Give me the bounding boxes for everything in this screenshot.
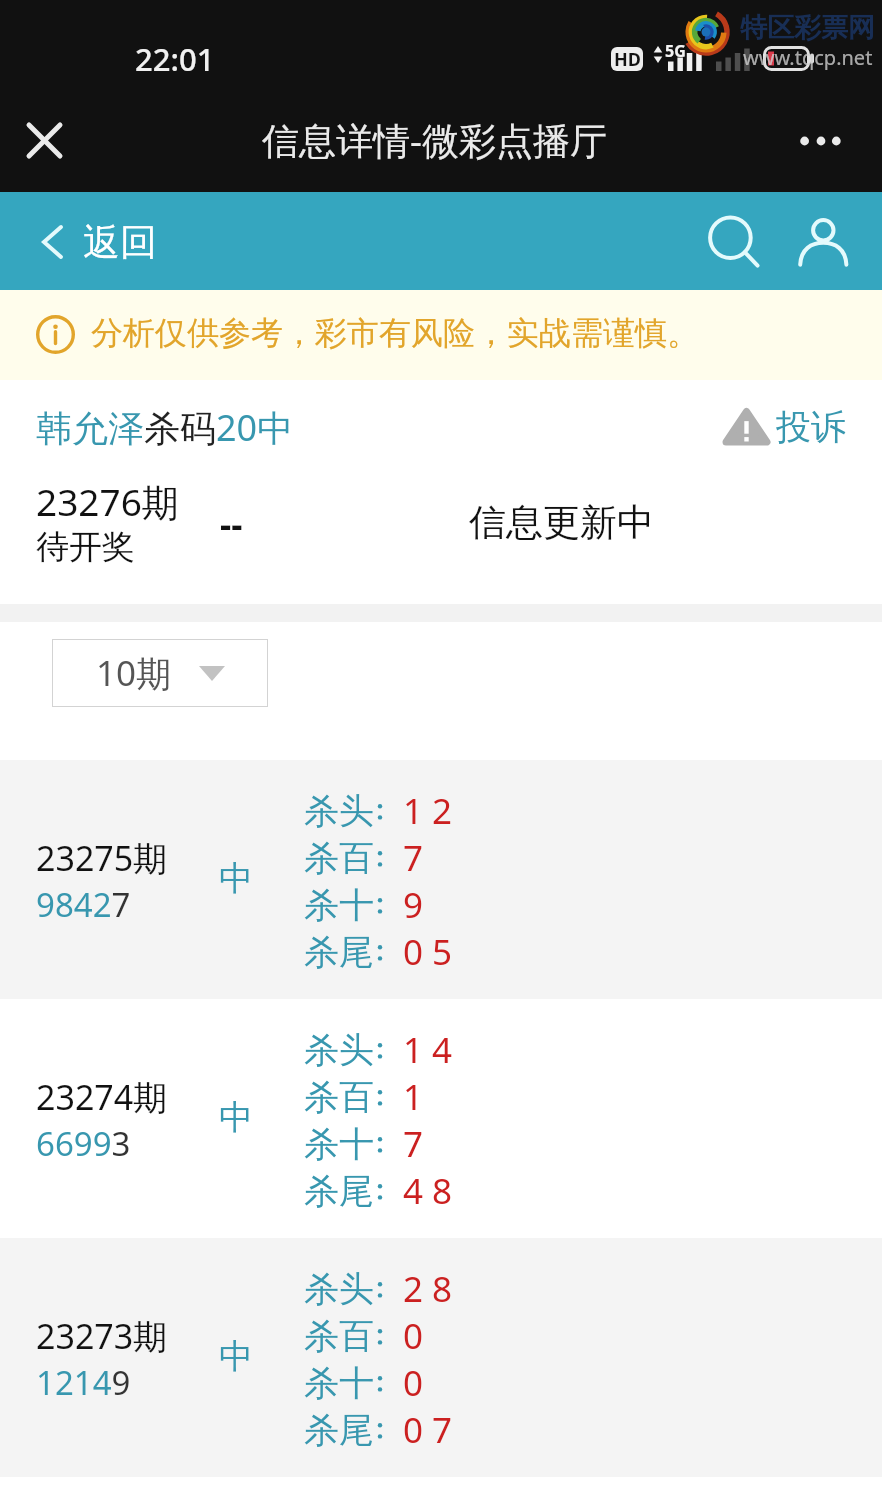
staticText: 10期 — [96, 649, 172, 697]
staticText: 分析仅供参考，彩市有风险，实战需谨慎。 — [91, 313, 699, 353]
staticText: 23274期 — [36, 1074, 168, 1120]
staticText: 特区彩票网 — [740, 11, 875, 45]
staticText: 杀百 — [304, 1314, 374, 1358]
button[interactable]: Account — [791, 213, 867, 289]
staticText: 杀头 — [304, 1267, 374, 1311]
staticText: 中 — [219, 1335, 253, 1378]
staticText: 杀百 — [304, 836, 374, 880]
staticText: 杀十 — [304, 1122, 374, 1166]
staticText: 66993 — [36, 1121, 131, 1166]
staticText: 2 8 — [403, 1265, 453, 1312]
staticText: 23275期 — [36, 835, 168, 881]
staticText: 投诉 — [776, 405, 846, 449]
button[interactable]: 投诉 — [722, 403, 846, 451]
button[interactable]: More options — [780, 111, 860, 171]
staticText: 杀头 — [304, 789, 374, 833]
button[interactable]: 23274期 — [0, 999, 882, 1238]
staticText: 中 — [219, 857, 253, 900]
staticText: 杀十 — [304, 883, 374, 927]
staticText: 杀百 — [304, 1075, 374, 1119]
staticText: www.tqcp.net — [743, 44, 873, 71]
staticText: 23273期 — [36, 1313, 168, 1359]
staticText: 98427 — [36, 882, 131, 927]
staticText: 0 — [403, 1312, 424, 1359]
button[interactable]: 23273期 — [0, 1238, 882, 1477]
staticText: 22:01 — [135, 38, 215, 80]
staticText: -- — [220, 500, 243, 548]
button[interactable]: 23275期 — [0, 760, 882, 999]
staticText: 0 — [403, 1359, 424, 1406]
staticText: 中 — [219, 1096, 253, 1139]
staticText: 信息详情-微彩点播厅 — [262, 114, 607, 165]
staticText: 1 4 — [403, 1026, 453, 1073]
staticText: 1 — [403, 1073, 424, 1120]
staticText: 杀尾 — [304, 930, 374, 974]
button[interactable]: 韩允泽杀码20中 — [36, 403, 294, 452]
staticText: 待开奖 — [36, 526, 135, 568]
staticText: HD — [614, 47, 641, 71]
staticText: 返回 — [83, 219, 157, 266]
button[interactable]: 返回 — [42, 205, 157, 279]
staticText: 信息更新中 — [469, 499, 654, 546]
staticText: 7 — [403, 1120, 424, 1167]
staticText: 杀头 — [304, 1028, 374, 1072]
staticText: 0 5 — [403, 928, 453, 975]
staticText: 5G — [665, 40, 686, 62]
staticText: 1 2 — [403, 787, 453, 834]
staticText: 4 8 — [403, 1167, 453, 1214]
button[interactable]: Close — [14, 110, 74, 170]
staticText: 12149 — [36, 1360, 131, 1405]
staticText: 23276期 — [36, 476, 179, 527]
staticText: 杀尾 — [304, 1169, 374, 1213]
staticText: 杀十 — [304, 1361, 374, 1405]
staticText: 杀尾 — [304, 1408, 374, 1452]
button[interactable]: Search — [698, 211, 774, 287]
staticText: 0 7 — [403, 1406, 453, 1453]
button[interactable]: 10期 — [52, 639, 268, 707]
staticText: 7 — [403, 834, 424, 881]
staticText: 9 — [403, 881, 424, 928]
